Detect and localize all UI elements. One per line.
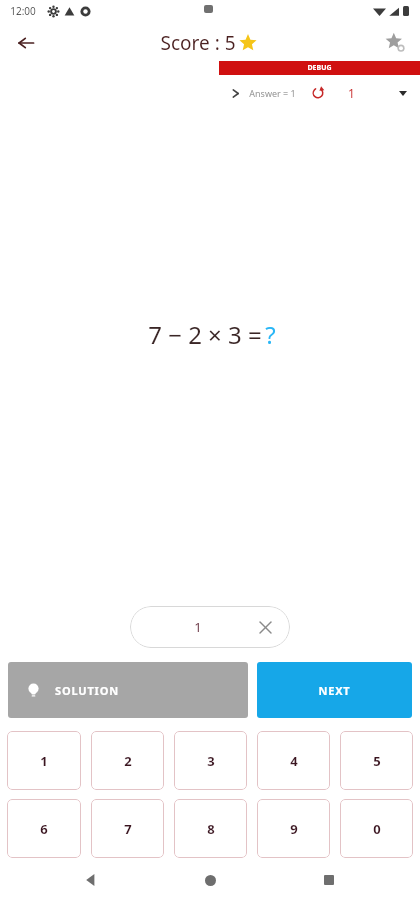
staticText: 1 (348, 85, 355, 101)
staticText: 3 (207, 752, 215, 770)
button[interactable]: NEXT (257, 662, 412, 718)
staticText: 4 (290, 752, 298, 770)
staticText: 8 (207, 820, 215, 838)
staticText: 7 (124, 820, 132, 838)
button[interactable]: 1 (130, 606, 290, 648)
staticText: 6 (40, 820, 48, 838)
button[interactable]: Rate (378, 26, 412, 60)
button[interactable]: 3 (174, 731, 247, 790)
button[interactable]: 8 (174, 799, 247, 858)
button[interactable]: Expand (227, 85, 243, 101)
button[interactable]: 2 (91, 731, 164, 790)
button[interactable]: Home (193, 863, 227, 897)
button[interactable]: 7 (91, 799, 164, 858)
staticText: Answer = 1 (249, 87, 296, 99)
button[interactable]: 1 (7, 731, 81, 790)
button[interactable]: Back (10, 27, 42, 59)
staticText: 12:00 (10, 4, 36, 18)
button[interactable]: 0 (340, 799, 413, 858)
staticText: SOLUTION (55, 683, 119, 698)
staticText: 7 − 2 × 3 = (145, 318, 265, 351)
button[interactable]: Back (74, 863, 108, 897)
staticText: 9 (290, 820, 298, 838)
button[interactable]: More (394, 84, 412, 102)
staticText: 5 (373, 752, 381, 770)
staticText: 0 (373, 820, 381, 838)
button[interactable]: 9 (257, 799, 330, 858)
button[interactable]: Clear (254, 616, 276, 638)
button[interactable]: 6 (7, 799, 81, 858)
button[interactable]: SOLUTION (8, 662, 248, 718)
staticText: 1 (40, 752, 48, 770)
button[interactable]: Recents (312, 863, 346, 897)
button[interactable]: 4 (257, 731, 330, 790)
staticText: Score : 5 (160, 30, 236, 56)
staticText: ? (265, 318, 276, 351)
staticText: 1 (194, 618, 202, 636)
button[interactable]: Refresh (308, 83, 328, 103)
staticText: NEXT (318, 683, 351, 698)
button[interactable]: 5 (340, 731, 413, 790)
staticText: 2 (124, 752, 132, 770)
staticText: DEBUG (307, 63, 332, 73)
